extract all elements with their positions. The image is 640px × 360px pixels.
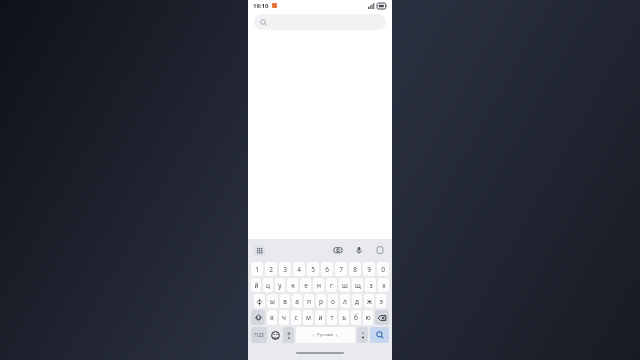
button[interactable]: ш	[339, 278, 350, 292]
button[interactable]: Search	[370, 327, 389, 343]
staticText: Русский	[317, 332, 334, 338]
button[interactable]: а	[292, 294, 302, 308]
button[interactable]: щ	[352, 278, 363, 292]
button[interactable]: ь	[339, 310, 349, 325]
staticText: ф	[257, 297, 262, 306]
staticText: ч	[282, 313, 286, 322]
staticText: ш	[342, 281, 348, 290]
button[interactable]: Camera	[332, 244, 344, 256]
staticText: а	[295, 297, 299, 306]
button[interactable]: 3	[279, 262, 291, 276]
button[interactable]: ?123	[251, 327, 267, 343]
button[interactable]: у	[275, 278, 285, 292]
button[interactable]: Backspace	[375, 310, 389, 325]
staticText: ?123	[254, 332, 264, 338]
button[interactable]: б	[351, 310, 361, 325]
staticText: х	[382, 281, 386, 290]
button[interactable]: 8	[349, 262, 361, 276]
staticText: п	[307, 297, 311, 306]
button[interactable]: 9	[363, 262, 375, 276]
staticText: н	[317, 281, 321, 290]
staticText: л	[343, 297, 347, 306]
button[interactable]: л	[340, 294, 350, 308]
staticText: м	[306, 313, 311, 322]
button[interactable]	[254, 14, 386, 30]
staticText: в	[283, 297, 287, 306]
button[interactable]: Shift	[251, 310, 265, 325]
button[interactable]: 7	[335, 262, 347, 276]
staticText: 3	[283, 265, 287, 274]
button[interactable]: э	[376, 294, 386, 308]
button[interactable]: з	[365, 278, 376, 292]
staticText: ю	[365, 313, 371, 322]
staticText: ь	[342, 313, 346, 322]
staticText: у	[278, 281, 282, 290]
staticText: и	[318, 313, 323, 322]
button[interactable]: т	[327, 310, 337, 325]
staticText: ›	[336, 332, 338, 338]
staticText: б	[354, 313, 358, 322]
button[interactable]: и	[315, 310, 325, 325]
staticText: р	[319, 297, 323, 306]
button[interactable]: й	[251, 278, 261, 292]
button[interactable]: 0	[377, 262, 389, 276]
button[interactable]: Voice input	[353, 244, 365, 256]
button[interactable]: г	[326, 278, 337, 292]
staticText: 7	[339, 265, 343, 274]
button[interactable]: п	[304, 294, 314, 308]
staticText: к	[291, 281, 295, 290]
staticText: й	[254, 281, 259, 290]
staticText: 4	[297, 265, 301, 274]
staticText: 8	[353, 265, 357, 274]
button[interactable]: Settings and comma	[283, 327, 294, 343]
button[interactable]: е	[300, 278, 311, 292]
button[interactable]: о	[328, 294, 338, 308]
button[interactable]: ж	[364, 294, 374, 308]
button[interactable]: Emoji	[269, 327, 281, 343]
button[interactable]: ч	[279, 310, 289, 325]
staticText: 2	[269, 265, 273, 274]
button[interactable]: с	[291, 310, 301, 325]
staticText: 5	[311, 265, 315, 274]
button[interactable]: 4	[293, 262, 305, 276]
button[interactable]: Keyboard settings	[254, 245, 265, 256]
button[interactable]: ‹	[296, 327, 355, 343]
staticText: е	[304, 281, 308, 290]
staticText: 6	[325, 265, 329, 274]
staticText: ц	[266, 281, 270, 290]
staticText: з	[369, 281, 373, 290]
button[interactable]: 2	[265, 262, 277, 276]
button[interactable]: Clipboard	[374, 244, 386, 256]
staticText: с	[294, 313, 298, 322]
button[interactable]: ц	[263, 278, 273, 292]
button[interactable]: в	[280, 294, 290, 308]
button[interactable]: р	[316, 294, 326, 308]
button[interactable]: 6	[321, 262, 333, 276]
staticText: ‹	[313, 332, 315, 338]
staticText: 9	[367, 265, 371, 274]
staticText: 1	[255, 265, 259, 274]
button[interactable]: ы	[267, 294, 278, 308]
button[interactable]: ю	[363, 310, 373, 325]
button[interactable]: 5	[307, 262, 319, 276]
button[interactable]: 1	[251, 262, 263, 276]
staticText: д	[355, 297, 359, 306]
button[interactable]: я	[267, 310, 277, 325]
button[interactable]: х	[378, 278, 389, 292]
button[interactable]: н	[313, 278, 324, 292]
staticText: г	[330, 281, 333, 290]
staticText: ж	[367, 297, 372, 306]
staticText: ы	[270, 297, 275, 306]
staticText: т	[330, 313, 334, 322]
button[interactable]: ф	[254, 294, 265, 308]
staticText: о	[331, 297, 335, 306]
staticText: 19:10	[253, 2, 269, 10]
button[interactable]: м	[303, 310, 313, 325]
button[interactable]: к	[287, 278, 298, 292]
button[interactable]: д	[352, 294, 362, 308]
staticText: э	[379, 297, 383, 306]
button[interactable]: Period	[357, 327, 368, 343]
staticText: я	[270, 313, 274, 322]
staticText: щ	[355, 281, 361, 290]
staticText: 0	[381, 265, 385, 274]
